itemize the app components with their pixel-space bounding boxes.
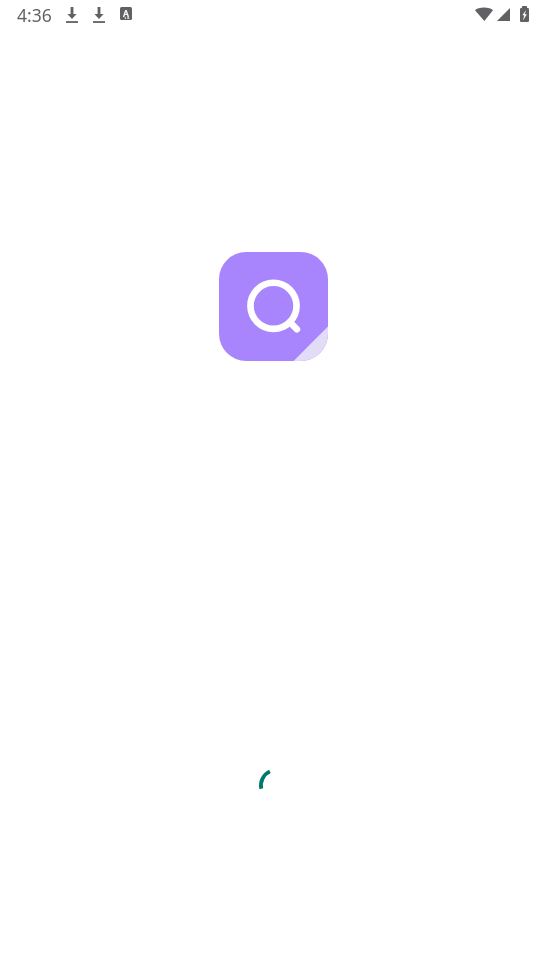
other: Input method (120, 7, 132, 20)
other: Mobile signal (497, 8, 510, 21)
other: Download in progress (66, 7, 78, 23)
other: Wi-Fi (475, 7, 493, 21)
other: App logo (219, 252, 328, 361)
other: Download in progress (93, 7, 105, 23)
staticText: A (123, 7, 129, 19)
other: Battery charging (520, 6, 529, 22)
other: Loading (259, 768, 294, 803)
staticText: 4:36 (17, 3, 52, 23)
